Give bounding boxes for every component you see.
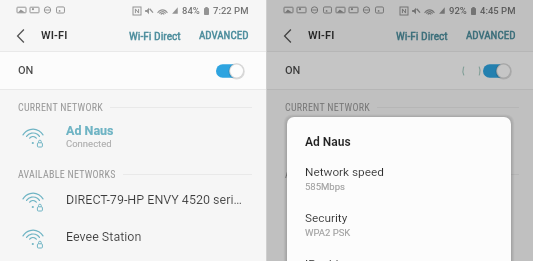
staticText: Eevee Station (333, 229, 409, 244)
button[interactable]: Wi-Fi Direct (125, 23, 185, 48)
button[interactable]: Ad Naus (267, 117, 533, 155)
staticText: WI-FI (41, 29, 68, 42)
button[interactable]: ON (267, 51, 533, 90)
button[interactable]: Navigate up (0, 20, 41, 51)
staticText: Wi-Fi Direct (396, 29, 448, 42)
staticText: CURRENT NETWORK (285, 102, 370, 114)
button[interactable]: Navigate up (267, 20, 308, 51)
staticText: ON (18, 64, 34, 77)
button[interactable]: Security (287, 211, 511, 238)
button[interactable]: ADVANCED (462, 23, 533, 48)
button[interactable]: DIRECT-79-HP ENVY 4520 seri… (0, 181, 266, 218)
staticText: CURRENT NETWORK (18, 102, 103, 114)
staticText: AVAILABLE NETWORKS (18, 169, 116, 181)
staticText: IP address (305, 257, 361, 261)
staticText: Wi-Fi Direct (129, 29, 181, 42)
staticText: 4:45 PM (480, 5, 516, 16)
button[interactable]: ADVANCED (195, 23, 266, 48)
staticText: 585Mbps (305, 181, 345, 192)
staticText: Ad Naus (305, 135, 351, 149)
button[interactable]: DIRECT-79-HP ENVY 4520 seri… (267, 181, 533, 218)
staticText: WI-FI (308, 29, 335, 42)
button[interactable]: Wi-Fi Direct (392, 23, 452, 48)
staticText: 7:22 PM (213, 5, 249, 16)
staticText: WPA2 PSK (305, 227, 351, 238)
staticText: 84% (182, 5, 200, 16)
staticText: 92% (449, 5, 467, 16)
staticText: AVAILABLE NETWORKS (285, 169, 383, 181)
staticText: Network speed (305, 165, 384, 179)
staticText: ADVANCED (466, 29, 516, 42)
staticText: Security (305, 211, 348, 225)
button[interactable]: ON (0, 51, 266, 90)
button[interactable]: Eevee Station (267, 218, 533, 255)
staticText: DIRECT-79-HP ENVY 4520 seri… (66, 192, 242, 207)
staticText: ADVANCED (199, 29, 249, 42)
staticText: ON (285, 64, 301, 77)
button[interactable]: Eevee Station (0, 218, 266, 255)
staticText: Connected (66, 138, 112, 149)
staticText: Ad Naus (66, 123, 114, 138)
button[interactable]: Network speed (287, 165, 511, 192)
staticText: Eevee Station (66, 229, 142, 244)
button[interactable]: IP address (287, 257, 511, 261)
button[interactable]: Ad Naus (0, 117, 266, 155)
staticText: Connected (333, 138, 379, 149)
